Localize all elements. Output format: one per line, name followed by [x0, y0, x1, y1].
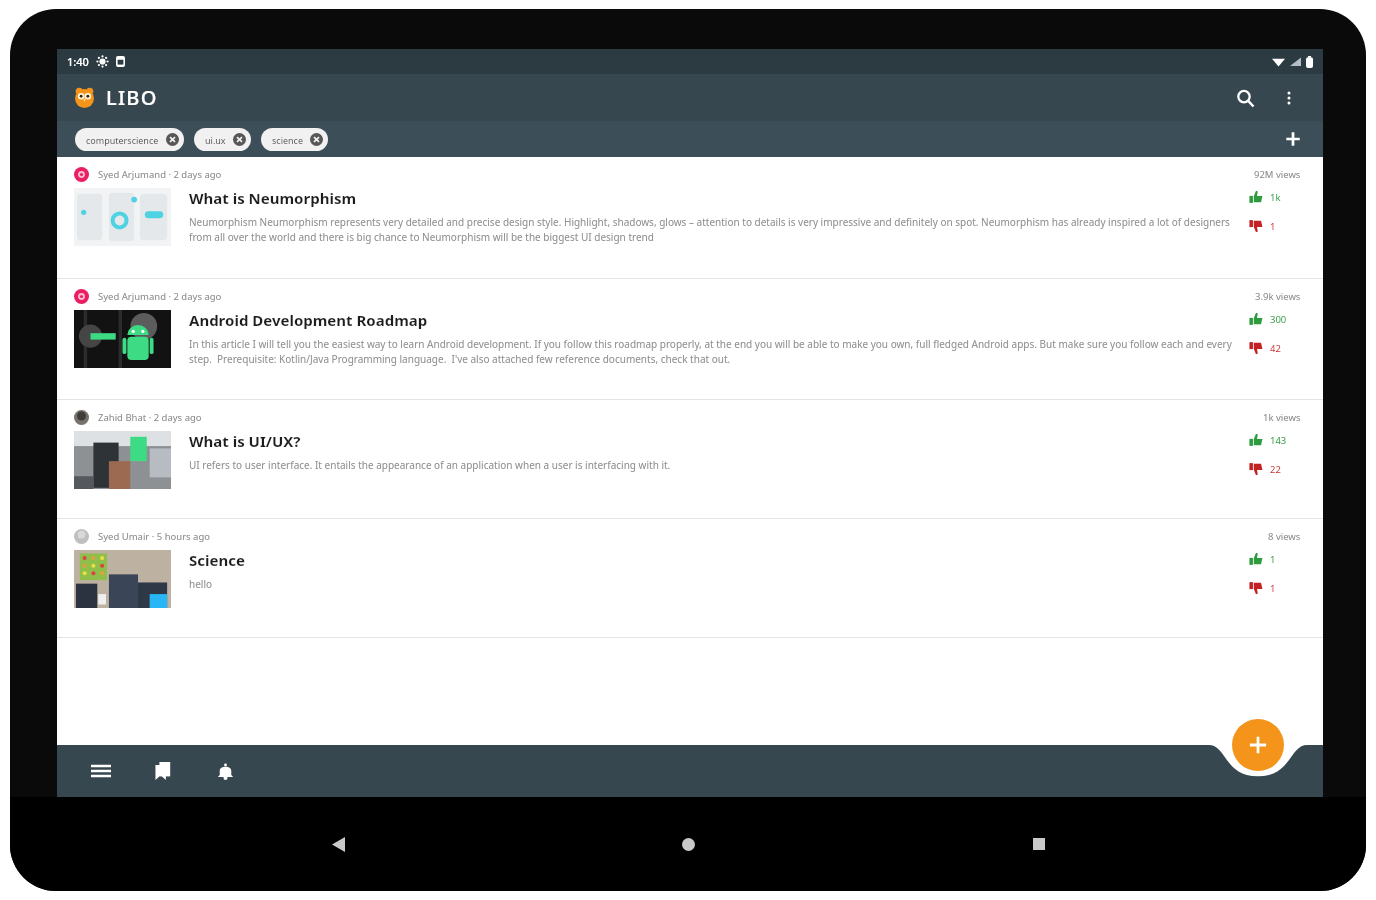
button[interactable]: 1: [1247, 579, 1278, 597]
button[interactable]: Syed Arjumand · 2 days ago: [57, 279, 1323, 399]
staticText: Neumorphism Neumorphism represents very …: [189, 215, 1233, 244]
button[interactable]: Search: [1225, 78, 1265, 118]
button[interactable]: 1: [1247, 217, 1278, 235]
button[interactable]: Menu: [79, 749, 123, 793]
button[interactable]: 22: [1247, 460, 1283, 478]
button[interactable]: 143: [1247, 431, 1289, 449]
button[interactable]: Home: [665, 821, 711, 867]
button[interactable]: Notifications: [203, 749, 247, 793]
staticText: LIBO: [106, 84, 158, 111]
button[interactable]: Create post: [1232, 719, 1284, 771]
staticText: 1: [1270, 220, 1276, 233]
button[interactable]: Syed Umair · 5 hours ago: [57, 519, 1323, 637]
staticText: 1k views: [1263, 411, 1301, 424]
staticText: Syed Umair · 5 hours ago: [98, 530, 211, 543]
staticText: UI refers to user interface. It entails …: [189, 458, 671, 472]
staticText: science: [272, 134, 303, 146]
staticText: Science: [189, 550, 245, 570]
staticText: 8 views: [1268, 530, 1301, 543]
staticText: 1:40: [67, 54, 89, 69]
staticText: Zahid Bhat · 2 days ago: [98, 411, 202, 424]
staticText: Syed Arjumand · 2 days ago: [98, 290, 222, 303]
staticText: 1: [1270, 582, 1276, 595]
button[interactable]: 42: [1247, 339, 1283, 357]
button[interactable]: Add topic: [1277, 123, 1309, 155]
button[interactable]: Zahid Bhat · 2 days ago: [57, 400, 1323, 518]
button[interactable]: computerscience: [75, 128, 184, 151]
button[interactable]: Recents: [1016, 821, 1062, 867]
button[interactable]: More options: [1269, 78, 1309, 118]
staticText: 143: [1270, 434, 1287, 447]
staticText: Syed Arjumand · 2 days ago: [98, 168, 222, 181]
button[interactable]: Library: [141, 749, 185, 793]
staticText: computerscience: [86, 134, 159, 146]
staticText: 1k: [1270, 191, 1281, 204]
staticText: 3.9k views: [1255, 290, 1301, 303]
staticText: 22: [1270, 463, 1281, 476]
staticText: ui.ux: [205, 134, 226, 146]
staticText: Android Development Roadmap: [189, 310, 428, 330]
staticText: 92M views: [1254, 168, 1301, 181]
staticText: In this article I will tell you the easi…: [189, 337, 1233, 366]
button[interactable]: 300: [1247, 310, 1289, 328]
staticText: hello: [189, 577, 213, 591]
staticText: 300: [1270, 313, 1287, 326]
button[interactable]: Back: [315, 821, 361, 867]
button[interactable]: 1: [1247, 550, 1278, 568]
button[interactable]: ui.ux: [194, 128, 251, 151]
staticText: 42: [1270, 342, 1281, 355]
staticText: What is Neumorphism: [189, 188, 357, 208]
staticText: 1: [1270, 553, 1276, 566]
button[interactable]: 1k: [1247, 188, 1283, 206]
button[interactable]: Syed Arjumand · 2 days ago: [57, 157, 1323, 278]
button[interactable]: science: [261, 128, 328, 151]
staticText: What is UI/UX?: [189, 431, 301, 451]
